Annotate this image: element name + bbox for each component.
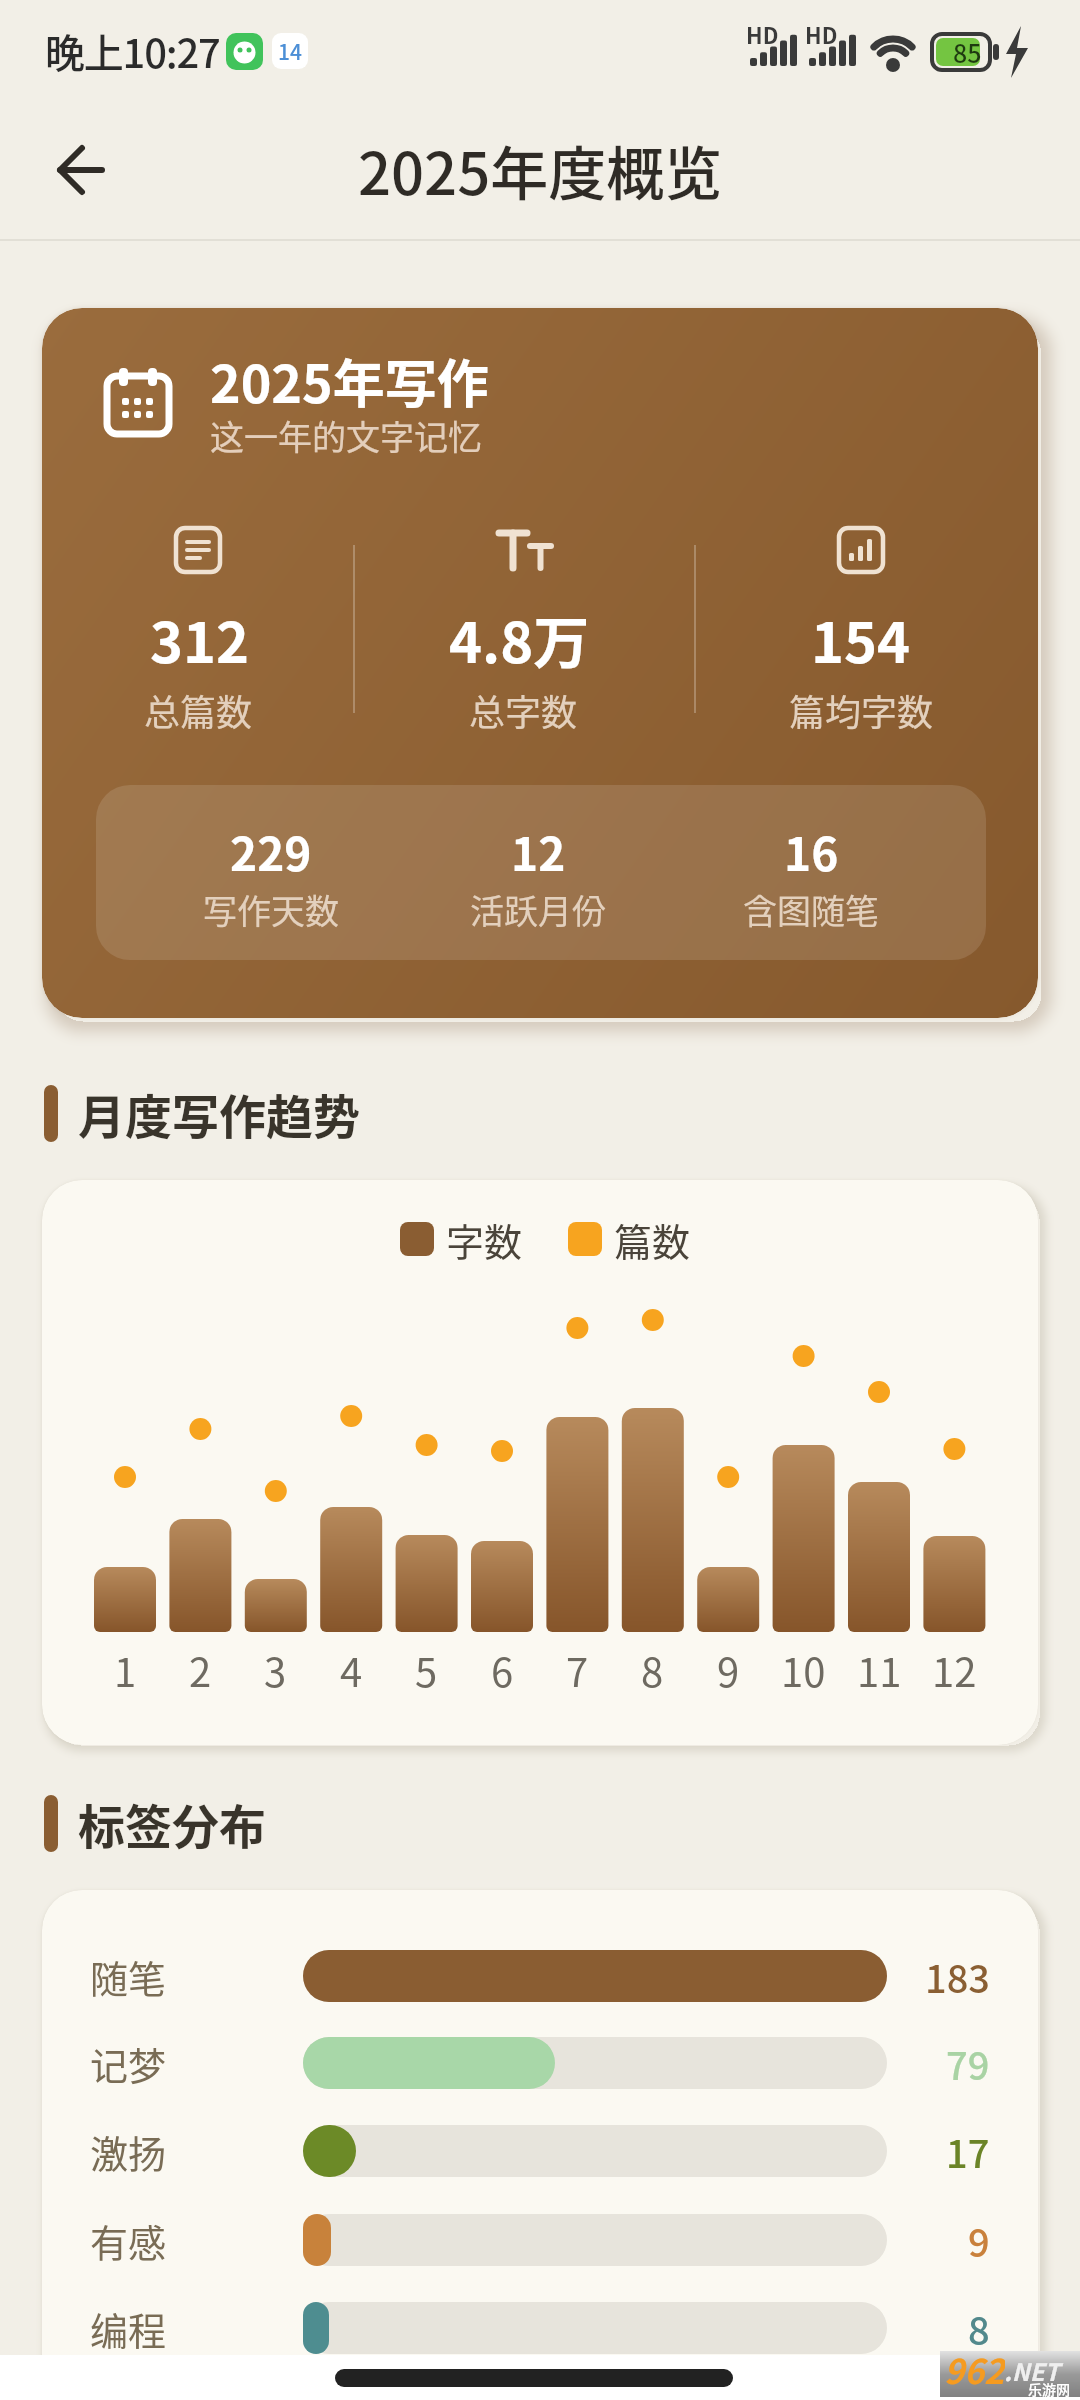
button[interactable] [40, 135, 115, 205]
staticText: 晚上10:27 [45, 22, 220, 80]
staticText: 篇数 [614, 1212, 691, 1267]
staticText: 含图随笔 [743, 885, 879, 934]
staticText: 312 [150, 598, 250, 679]
staticText: 总篇数 [144, 684, 253, 736]
staticText: 7 [566, 1641, 589, 1699]
button[interactable]: 字数 [42, 1180, 1038, 1745]
staticText: 激扬 [90, 2124, 167, 2179]
button[interactable]: 2025年写作 [42, 308, 1038, 1018]
staticText: 2025年度概览 [358, 128, 723, 212]
staticText: 篇均字数 [789, 684, 934, 736]
staticText: 2 [189, 1641, 212, 1699]
staticText: 229 [230, 818, 312, 885]
staticText: 12 [511, 818, 566, 885]
staticText: 活跃月份 [470, 885, 606, 934]
staticText: 3 [264, 1641, 287, 1699]
button[interactable]: 随笔 [42, 1890, 1038, 2400]
staticText: 962 [944, 2345, 1005, 2391]
staticText: 8 [641, 1641, 664, 1699]
staticText: 8 [968, 2301, 990, 2356]
staticText: 9 [717, 1641, 740, 1699]
staticText: 乐游网 [1028, 2379, 1070, 2399]
staticText: 字数 [446, 1212, 523, 1267]
staticText: 月度写作趋势 [78, 1079, 360, 1147]
staticText: 总字数 [469, 684, 578, 736]
staticText: 有感 [90, 2213, 167, 2268]
staticText: 标签分布 [78, 1789, 266, 1857]
staticText: 10 [781, 1641, 826, 1699]
staticText: 5 [415, 1641, 438, 1699]
staticText: 4 [340, 1641, 363, 1699]
staticText: 6 [491, 1641, 514, 1699]
staticText: 11 [857, 1641, 902, 1699]
staticText: 4.8万 [449, 598, 590, 679]
staticText: 编程 [90, 2301, 167, 2356]
staticText: 9 [968, 2213, 990, 2268]
staticText: 154 [811, 598, 911, 679]
staticText: .NET [1004, 2353, 1060, 2388]
staticText: 79 [946, 2036, 990, 2091]
staticText: 2025年写作 [210, 343, 489, 418]
staticText: 记梦 [90, 2036, 167, 2091]
staticText: 随笔 [90, 1949, 167, 2004]
staticText: 写作天数 [203, 885, 339, 934]
staticText: HD [805, 18, 838, 50]
staticText: 这一年的文字记忆 [210, 411, 482, 460]
staticText: 1 [114, 1641, 137, 1699]
staticText: 17 [946, 2124, 990, 2179]
staticText: 16 [784, 818, 839, 885]
staticText: 14 [278, 36, 302, 66]
staticText: 183 [925, 1949, 990, 2004]
staticText: HD [746, 18, 779, 50]
staticText: 85 [953, 34, 982, 70]
staticText: 12 [932, 1641, 977, 1699]
